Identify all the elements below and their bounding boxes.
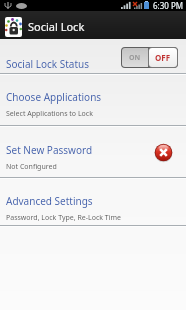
- button[interactable]: Social Lock Status: [0, 39, 186, 73]
- staticText: Social Lock Status: [6, 57, 90, 71]
- staticText: Choose Applications: [6, 90, 102, 104]
- staticText: OFF: [155, 52, 171, 63]
- staticText: 6:30 PM: [153, 0, 184, 11]
- staticText: Password, Lock Type, Re-Lock Time: [6, 213, 122, 223]
- staticText: Set New Password: [6, 143, 93, 157]
- button[interactable]: Choose Applications: [0, 75, 186, 125]
- button[interactable]: ON: [121, 47, 178, 68]
- staticText: Social Lock: [28, 19, 85, 34]
- staticText: Advanced Settings: [6, 194, 93, 208]
- staticText: Select Applications to Lock: [6, 109, 93, 119]
- button[interactable]: Advanced Settings: [0, 179, 186, 225]
- staticText: ON: [129, 53, 141, 63]
- button[interactable]: Set New Password: [0, 127, 186, 177]
- staticText: Not Configured: [6, 162, 57, 172]
